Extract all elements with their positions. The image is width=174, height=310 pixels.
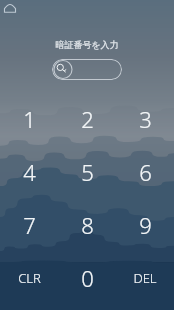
staticText: 7 [23,210,36,240]
staticText: 8 [81,210,94,240]
button[interactable]: 9 [116,198,174,251]
button[interactable]: 4 [0,145,58,198]
staticText: 1 [23,104,36,134]
button[interactable]: DEL [116,251,174,304]
button[interactable]: 0 [58,251,116,304]
button[interactable]: PIN entry field [52,59,122,80]
staticText: 3 [139,104,152,134]
button[interactable]: 6 [116,145,174,198]
other: Notification [4,4,16,13]
staticText: 暗証番号を入力 [55,39,119,50]
staticText: 4 [23,157,36,187]
button[interactable]: 8 [58,198,116,251]
staticText: 9 [139,210,152,240]
button[interactable]: CLR [0,251,58,304]
staticText: 6 [139,157,152,187]
button[interactable]: 5 [58,145,116,198]
button[interactable]: 2 [58,92,116,145]
staticText: CLR [18,269,41,287]
staticText: DEL [133,269,157,287]
button[interactable]: 1 [0,92,58,145]
button[interactable]: 7 [0,198,58,251]
button[interactable]: 3 [116,92,174,145]
staticText: 0 [81,263,94,293]
staticText: 5 [81,157,94,187]
staticText: 2 [81,104,94,134]
